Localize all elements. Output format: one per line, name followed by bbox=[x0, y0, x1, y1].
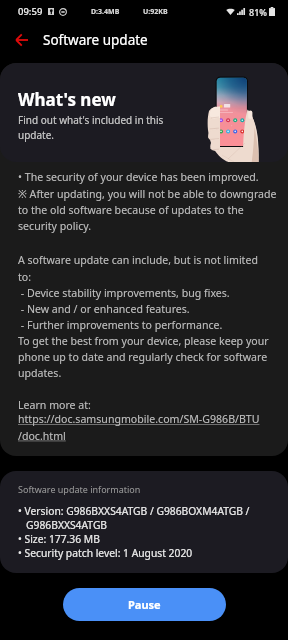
button[interactable]: Pause bbox=[63, 588, 226, 621]
staticText: U:92KB bbox=[143, 7, 168, 17]
staticText: D:3.4MB bbox=[91, 7, 120, 17]
staticText: • The security of your device has been i… bbox=[18, 170, 277, 233]
staticText: 81% bbox=[249, 6, 267, 18]
staticText: • Version: G986BXXS4ATGB / G986BOXM4ATGB… bbox=[18, 504, 250, 560]
staticText: A software update can include, but is no… bbox=[18, 253, 269, 380]
staticText: Find out what's included in this update. bbox=[18, 113, 164, 142]
staticText: Software update information bbox=[18, 483, 141, 495]
staticText: 09:59 bbox=[18, 5, 43, 18]
staticText: Pause bbox=[128, 597, 161, 612]
button[interactable]: Back bbox=[6, 25, 36, 55]
staticText: Software update bbox=[43, 31, 148, 49]
staticText: Learn more at: bbox=[18, 398, 91, 412]
button[interactable]: https://doc.samsungmobile.com/SM-G986B/B… bbox=[18, 412, 260, 443]
staticText: What's new bbox=[18, 88, 116, 111]
